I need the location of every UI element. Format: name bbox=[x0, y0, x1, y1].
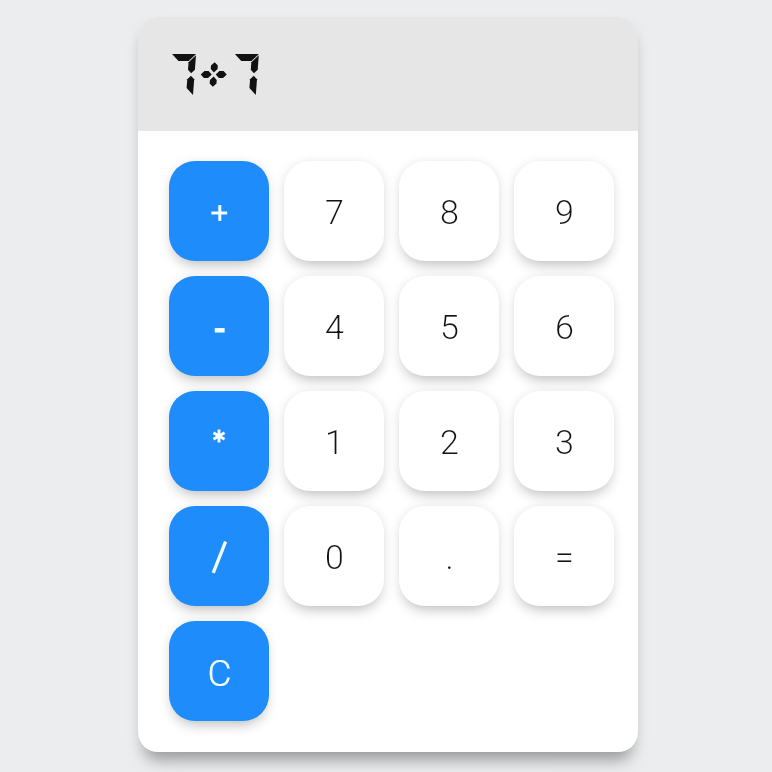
staticText: 6 bbox=[555, 307, 574, 347]
staticText: 2 bbox=[440, 422, 459, 462]
staticText: C bbox=[207, 652, 232, 695]
button[interactable]: Divide bbox=[169, 506, 269, 606]
button[interactable]: Clear bbox=[169, 621, 269, 721]
button[interactable]: 1 bbox=[284, 391, 384, 491]
staticText: 0 bbox=[325, 537, 344, 577]
button[interactable]: 3 bbox=[514, 391, 614, 491]
button[interactable]: = bbox=[514, 506, 614, 606]
staticText: 4 bbox=[325, 307, 344, 347]
staticText: = bbox=[555, 537, 574, 577]
button[interactable]: Multiply bbox=[169, 391, 269, 491]
button[interactable]: 9 bbox=[514, 161, 614, 261]
staticText: 7 bbox=[325, 192, 344, 232]
staticText: 5 bbox=[440, 307, 459, 347]
button[interactable]: 8 bbox=[399, 161, 499, 261]
button[interactable]: 7 bbox=[284, 161, 384, 261]
button[interactable]: 2 bbox=[399, 391, 499, 491]
staticText: 3 bbox=[555, 422, 574, 462]
staticText: 8 bbox=[440, 192, 459, 232]
button[interactable]: 6 bbox=[514, 276, 614, 376]
staticText: 1 bbox=[325, 422, 344, 462]
button[interactable]: Plus bbox=[169, 161, 269, 261]
button[interactable]: 0 bbox=[284, 506, 384, 606]
button[interactable]: Minus bbox=[169, 276, 269, 376]
staticText: . bbox=[445, 537, 454, 577]
button[interactable]: 4 bbox=[284, 276, 384, 376]
staticText: 9 bbox=[555, 192, 574, 232]
button[interactable]: 5 bbox=[399, 276, 499, 376]
button[interactable]: . bbox=[399, 506, 499, 606]
